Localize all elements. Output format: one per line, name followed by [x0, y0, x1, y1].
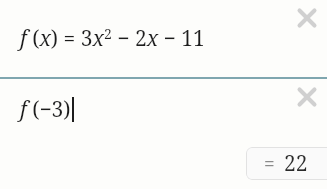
button[interactable]: f (x) = 3x2 − 2x − 11 [0, 0, 327, 77]
button[interactable]: = [246, 147, 327, 180]
button[interactable]: Clear second expression [296, 86, 318, 108]
staticText: 22 [284, 149, 308, 178]
staticText: f (x) = 3x2 − 2x − 11 [20, 24, 205, 53]
staticText: = [264, 151, 275, 177]
button[interactable]: f (−3) [20, 95, 74, 124]
button[interactable]: Clear first expression [296, 7, 318, 29]
staticText: f (−3) [20, 95, 71, 124]
